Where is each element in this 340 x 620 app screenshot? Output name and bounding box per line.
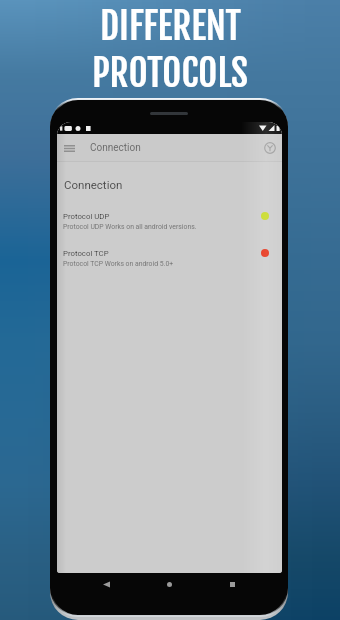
button[interactable]: Back — [95, 573, 117, 595]
button[interactable]: Protocol UDP — [57, 200, 282, 237]
button[interactable]: Connection status — [259, 137, 281, 159]
staticText: PROTOCOLS — [92, 50, 248, 97]
button[interactable]: Open navigation menu — [58, 137, 80, 159]
staticText: Protocol UDP Works on all android versio… — [63, 223, 197, 231]
staticText: Connection — [90, 142, 141, 154]
button[interactable]: Protocol TCP — [57, 237, 282, 274]
staticText: Connection — [64, 178, 123, 191]
staticText: Protocol UDP — [63, 212, 110, 221]
staticText: DIFFERENT — [100, 3, 241, 50]
staticText: Protocol TCP — [63, 249, 109, 258]
button[interactable]: Home — [158, 573, 180, 595]
button[interactable]: Recent apps — [221, 573, 243, 595]
staticText: Protocol TCP Works on android 5.0+ — [63, 260, 174, 268]
